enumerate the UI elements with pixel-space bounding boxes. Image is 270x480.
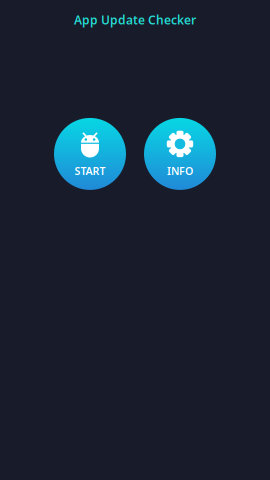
button[interactable]: START <box>54 118 126 190</box>
staticText: START <box>74 164 105 178</box>
button[interactable]: INFO <box>144 118 216 190</box>
staticText: INFO <box>167 164 193 178</box>
staticText: App Update Checker <box>74 12 196 28</box>
